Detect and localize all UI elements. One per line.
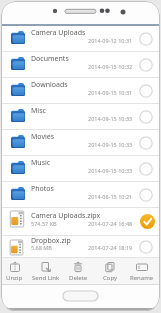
staticText: Documents	[31, 54, 69, 64]
staticText: Music	[31, 158, 51, 168]
staticText: Rename	[130, 274, 154, 282]
button[interactable]: Rename	[126, 258, 158, 285]
staticText: Unzip	[6, 274, 23, 282]
staticText: 2014-09-15 10:33	[88, 141, 133, 148]
staticText: Camera Uploads.zipx	[31, 211, 101, 221]
staticText: 2014-07-24 18:19	[88, 244, 133, 251]
button[interactable]: Movies	[1, 130, 160, 156]
staticText: 2014-09-15 10:33	[88, 167, 133, 174]
staticText: 2014-07-24 16:48	[88, 220, 133, 227]
button[interactable]: Photos	[1, 182, 160, 208]
staticText: Copy	[103, 274, 118, 282]
staticText: Camera Uploads	[31, 28, 86, 38]
button[interactable]: Music	[1, 156, 160, 182]
staticText: 2014-09-12 10:31	[88, 37, 133, 44]
button[interactable]: Camera Uploads.zipx	[1, 208, 160, 236]
button[interactable]: Downloads	[1, 78, 160, 104]
staticText: Dropbox.zip	[31, 236, 71, 246]
staticText: Delete	[69, 274, 88, 282]
staticText: 2014-09-15 10:32	[88, 63, 133, 70]
staticText: 2014-09-15 10:33	[88, 115, 133, 122]
staticText: 574.57 KB	[31, 220, 57, 227]
button[interactable]: Camera Uploads	[1, 26, 160, 52]
button[interactable]: Unzip	[1, 258, 30, 285]
staticText: Movies	[31, 132, 55, 142]
staticText: 5.68 MB	[31, 244, 52, 251]
button[interactable]: Dropbox.zip	[1, 236, 160, 258]
button[interactable]: Documents	[1, 52, 160, 78]
staticText: Photos	[31, 184, 54, 194]
staticText: 2014-06-15 10:21	[88, 193, 133, 200]
button[interactable]: Delete	[62, 258, 94, 285]
button[interactable]: Copy	[94, 258, 126, 285]
staticText: Misc	[31, 106, 46, 116]
staticText: Downloads	[31, 80, 68, 90]
button[interactable]: Send Link	[30, 258, 62, 285]
staticText: 2014-09-15 10:31	[88, 89, 133, 96]
staticText: Send Link	[32, 274, 60, 282]
button[interactable]: Misc	[1, 104, 160, 130]
